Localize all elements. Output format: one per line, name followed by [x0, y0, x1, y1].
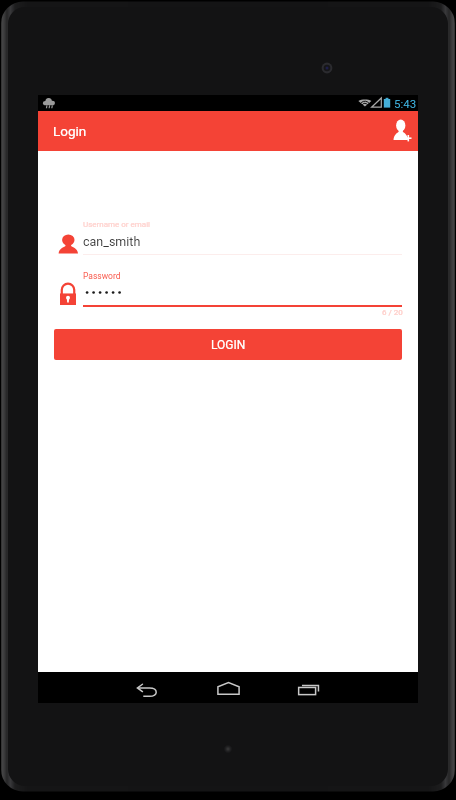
button[interactable]: Home	[208, 672, 248, 703]
staticText: Login	[53, 123, 87, 139]
button[interactable]: Back	[127, 672, 167, 703]
staticText: Password	[83, 271, 121, 281]
button[interactable]: LOGIN	[54, 329, 402, 360]
staticText: LOGIN	[211, 338, 246, 352]
button[interactable]: Recent apps	[289, 672, 329, 703]
staticText: 5:43	[394, 97, 417, 110]
staticText: 6 / 20	[382, 308, 403, 317]
staticText: can_smith	[83, 234, 141, 249]
button[interactable]: Add account	[378, 111, 418, 151]
staticText: Username or email	[83, 220, 151, 229]
